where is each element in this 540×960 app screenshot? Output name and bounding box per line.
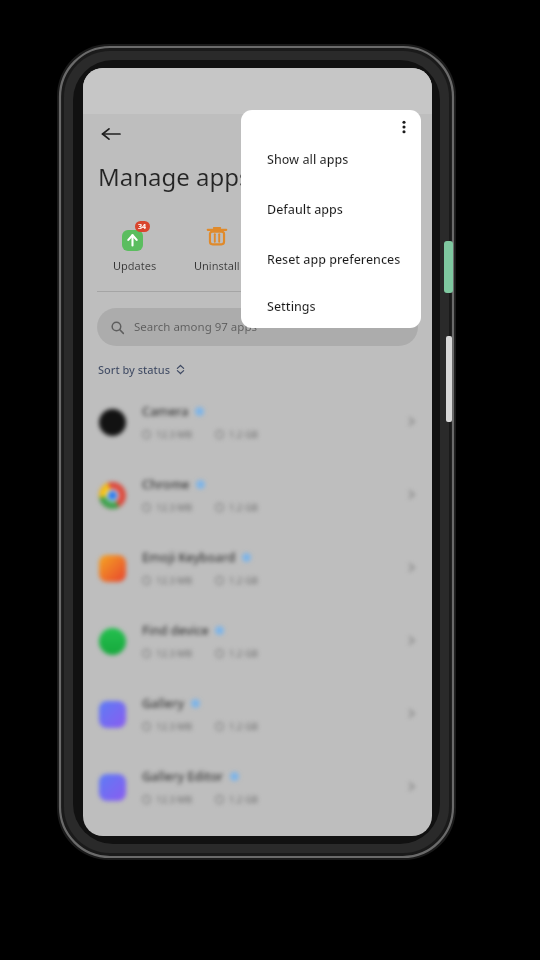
staticText: 12.3 MB [156, 720, 193, 733]
staticText: 1.2 GB [229, 428, 258, 441]
staticText: 12.3 MB [156, 647, 193, 660]
staticText: 12.3 MB [156, 501, 193, 514]
staticText: 12.3 MB [156, 793, 193, 806]
button[interactable]: Sort by status [98, 362, 185, 377]
button[interactable]: Gallery [83, 677, 432, 750]
staticText: Gallery Editor [142, 768, 224, 785]
button[interactable]: 34 [93, 217, 176, 277]
button[interactable]: More options [387, 110, 421, 144]
button[interactable]: Gallery Editor [83, 750, 432, 823]
button[interactable]: Power [444, 241, 453, 293]
button[interactable]: Emoji Keyboard [83, 531, 432, 604]
button[interactable]: Find device [83, 604, 432, 677]
button[interactable]: Settings [241, 284, 421, 328]
button[interactable] [258, 217, 340, 262]
button[interactable]: Reset app preferences [241, 234, 421, 284]
button[interactable]: Default apps [241, 184, 421, 234]
button[interactable] [340, 217, 422, 262]
staticText: 1.2 GB [229, 574, 258, 587]
staticText: Search among 97 apps [134, 319, 257, 335]
staticText: Gallery [142, 695, 185, 712]
staticText: Show all apps [267, 151, 349, 168]
staticText: Settings [267, 298, 316, 315]
staticText: Emoji Keyboard [142, 549, 236, 566]
staticText: Updates [113, 258, 157, 273]
staticText: Uninstall [194, 258, 240, 273]
staticText: Camera [142, 403, 189, 420]
staticText: 34 [138, 222, 147, 232]
staticText: Default apps [267, 201, 343, 218]
staticText: 1.2 GB [229, 647, 258, 660]
staticText: Reset app preferences [267, 251, 401, 268]
button[interactable]: Uninstall [176, 217, 258, 277]
staticText: 12.3 MB [156, 574, 193, 587]
staticText: 1.2 GB [229, 720, 258, 733]
staticText: 1.2 GB [229, 501, 258, 514]
staticText: Chrome [142, 476, 190, 493]
button[interactable]: Chrome [83, 458, 432, 531]
staticText: Find device [142, 622, 209, 639]
button[interactable]: Show all apps [241, 134, 421, 184]
staticText: 12.3 MB [156, 428, 193, 441]
button[interactable]: Search among 97 apps [97, 308, 418, 346]
button[interactable]: Volume [446, 336, 452, 422]
staticText: Manage apps [98, 160, 251, 193]
button[interactable]: Back [91, 114, 131, 154]
staticText: 1.2 GB [229, 793, 258, 806]
button[interactable]: Camera [83, 385, 432, 458]
staticText: Sort by status [98, 362, 171, 377]
